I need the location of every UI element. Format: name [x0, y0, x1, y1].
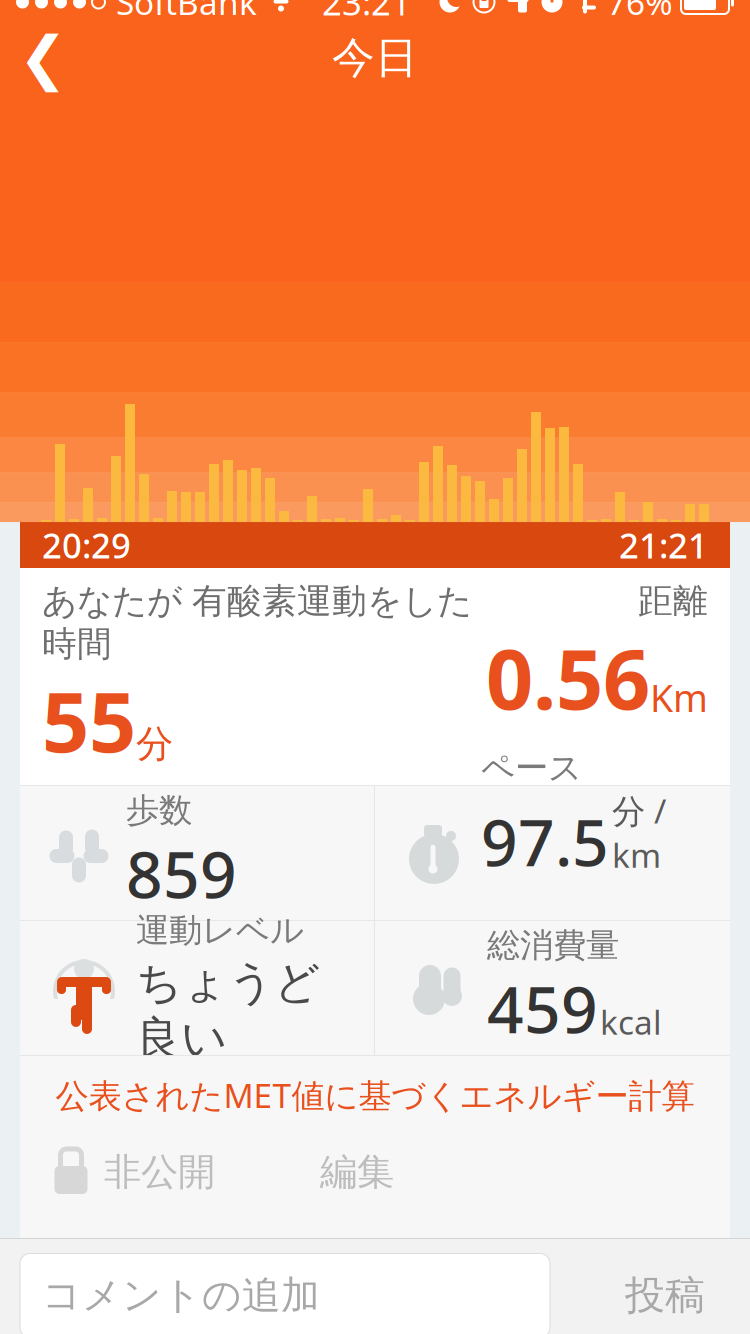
staticText: 97.5	[481, 799, 609, 884]
staticText: ちょうど良い	[136, 955, 320, 1066]
staticText: 歩数	[126, 790, 192, 831]
staticText: 76%	[607, 0, 673, 24]
staticText: 859	[126, 831, 237, 916]
staticText: ペース	[481, 747, 582, 788]
staticText: あなたが 有酸素運動をした 時間	[42, 580, 472, 665]
staticText: 55	[42, 665, 136, 775]
staticText: SoftBank	[116, 0, 257, 24]
staticText: 20:29	[42, 522, 131, 568]
staticText: 21:21	[619, 522, 708, 568]
staticText: コメントの追加	[42, 1272, 320, 1319]
button[interactable]: 編集	[320, 1134, 470, 1210]
button[interactable]: コメントの追加	[20, 1253, 550, 1334]
button[interactable]: 投稿	[580, 1253, 750, 1334]
button[interactable]: 公表されたMET値に基づくエネルギー計算	[20, 1056, 730, 1134]
staticText: 運動レベル	[136, 910, 304, 951]
staticText: 編集	[320, 1149, 394, 1195]
staticText: 0.56	[486, 623, 650, 732]
staticText: kcal	[600, 1000, 662, 1044]
staticText: 分	[136, 721, 173, 767]
staticText: Km	[650, 673, 708, 722]
staticText: 距離	[638, 580, 708, 623]
staticText: 総消費量	[487, 925, 619, 966]
staticText: 23:21	[322, 0, 411, 25]
staticText: 459	[487, 966, 598, 1051]
staticText: 今日	[332, 32, 418, 84]
button[interactable]: 非公開	[20, 1134, 320, 1210]
staticText: 非公開	[104, 1149, 215, 1195]
staticText: 投稿	[625, 1271, 705, 1320]
button[interactable]: 戻る	[0, 22, 86, 94]
staticText: 公表されたMET値に基づくエネルギー計算	[55, 1073, 694, 1117]
staticText: ❮	[18, 25, 67, 91]
staticText: 分 / km	[612, 788, 666, 877]
